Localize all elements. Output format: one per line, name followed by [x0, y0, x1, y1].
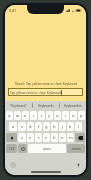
button[interactable]: h [51, 122, 58, 131]
button[interactable]: Dictate [75, 162, 81, 168]
staticText: q [8, 113, 11, 118]
button[interactable]: s [18, 122, 26, 131]
staticText: 9:41 [9, 8, 16, 13]
button[interactable]: x [27, 133, 34, 142]
staticText: g [45, 124, 48, 129]
button[interactable]: t [38, 111, 45, 120]
staticText: v [45, 135, 48, 140]
button[interactable]: p [78, 111, 85, 120]
staticText: t [41, 113, 43, 118]
button[interactable]: l [75, 122, 82, 131]
staticText: o [72, 113, 75, 118]
staticText: Keyboardist [64, 104, 82, 108]
button[interactable]: q [6, 111, 13, 120]
button[interactable]: b [51, 133, 58, 142]
staticText: k [69, 124, 72, 129]
staticText: Tap yellow zone to close Keyboard [10, 91, 61, 95]
button[interactable]: z [18, 133, 26, 142]
button[interactable]: w [14, 111, 21, 120]
button[interactable]: "Keyboard" [5, 101, 32, 110]
staticText: "Keyboard" [10, 104, 27, 108]
staticText: i [65, 113, 67, 118]
button[interactable]: y [46, 111, 53, 120]
staticText: j [62, 124, 64, 129]
staticText: return [72, 147, 81, 151]
staticText: y [48, 113, 51, 118]
button[interactable]: Delete [75, 133, 85, 142]
staticText: u [56, 113, 59, 118]
button[interactable]: 123 [6, 144, 17, 153]
button[interactable]: Emoji keyboard [10, 162, 16, 168]
staticText: space [43, 147, 52, 151]
button[interactable]: e [22, 111, 29, 120]
button[interactable]: d [27, 122, 34, 131]
staticText: l [78, 124, 80, 129]
staticText: 123 [9, 147, 15, 151]
staticText: b [53, 135, 56, 140]
button[interactable]: Emoji [18, 144, 27, 153]
button[interactable]: Keyboardist [60, 101, 86, 110]
staticText: f [38, 124, 40, 129]
button[interactable]: Shift [6, 133, 17, 142]
staticText: p [80, 113, 83, 118]
staticText: a [12, 124, 15, 129]
button[interactable]: g [43, 122, 50, 131]
staticText: Result: Tap yellow zone to close Keyboar… [15, 82, 77, 86]
staticText: w [16, 113, 20, 118]
staticText: e [24, 113, 27, 118]
button[interactable]: o [70, 111, 77, 120]
button[interactable]: r [30, 111, 37, 120]
staticText: h [53, 124, 56, 129]
button[interactable]: u [54, 111, 61, 120]
button[interactable]: m [67, 133, 74, 142]
staticText: r [33, 113, 35, 118]
staticText: c [38, 135, 40, 140]
button[interactable]: space [28, 144, 66, 153]
button[interactable]: return [67, 144, 85, 153]
button[interactable]: Tap yellow zone to close Keyboard [8, 88, 83, 96]
staticText: x [29, 135, 32, 140]
button[interactable]: n [59, 133, 66, 142]
button[interactable]: i [62, 111, 69, 120]
staticText: s [21, 124, 23, 129]
button[interactable]: a [9, 122, 17, 131]
button[interactable]: v [43, 133, 50, 142]
staticText: d [29, 124, 32, 129]
staticText: Keyboards [38, 104, 54, 108]
button[interactable]: c [35, 133, 42, 142]
button[interactable]: Result: Tap yellow zone to close Keyboar… [5, 15, 86, 101]
staticText: m [69, 135, 73, 140]
button[interactable]: f [35, 122, 42, 131]
staticText: z [21, 135, 23, 140]
button[interactable]: k [67, 122, 74, 131]
button[interactable]: j [59, 122, 66, 131]
staticText: n [61, 135, 64, 140]
button[interactable]: Keyboards [33, 101, 59, 110]
